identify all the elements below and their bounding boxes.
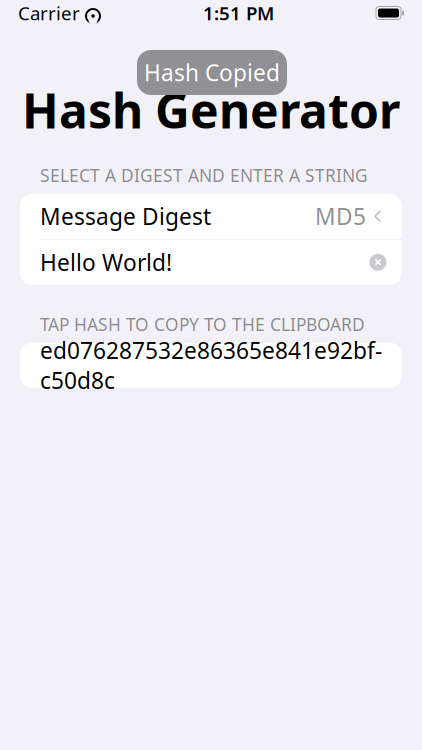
staticText: SELECT A DIGEST AND ENTER A STRING xyxy=(40,164,368,187)
button[interactable]: Message Digest xyxy=(20,194,402,239)
staticText: Carrier xyxy=(18,1,80,25)
staticText: Message Digest xyxy=(40,201,211,231)
button[interactable]: Clear text xyxy=(363,247,393,277)
staticText: Hash Generator xyxy=(22,78,400,142)
staticText: 1:51 PM xyxy=(203,1,274,25)
staticText: Hash Copied xyxy=(144,57,280,87)
staticText: Hello World! xyxy=(40,247,172,277)
staticText: MD5 xyxy=(315,201,366,231)
button[interactable]: ed076287532e86365e841e92bfc50d8c xyxy=(20,343,402,388)
staticText: ed076287532e86365e841e92bfc50d8c xyxy=(40,335,382,395)
staticText: TAP HASH TO COPY TO THE CLIPBOARD xyxy=(40,313,365,336)
